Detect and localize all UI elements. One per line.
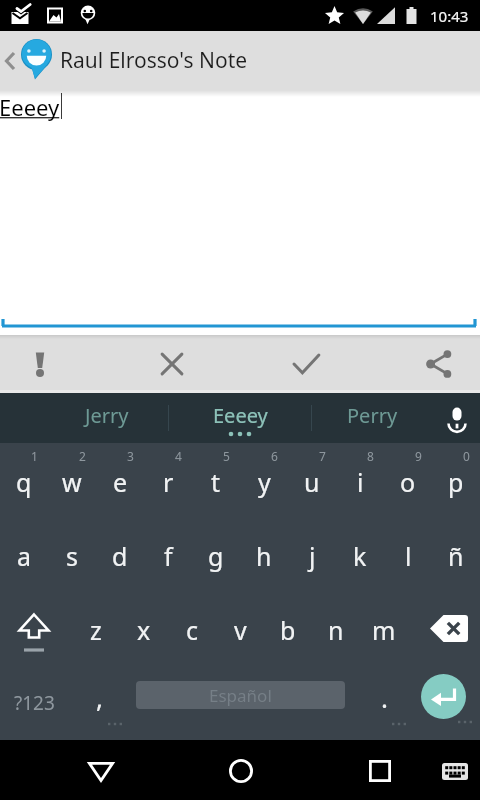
button[interactable]: Shift [0, 591, 68, 665]
staticText: h [256, 539, 272, 573]
staticText: 3 [127, 448, 134, 464]
button[interactable]: w [48, 443, 96, 517]
staticText: f [164, 539, 173, 573]
button[interactable]: t [192, 443, 240, 517]
staticText: Raul Elrosso's Note [60, 46, 248, 75]
staticText: c [186, 613, 199, 647]
staticText: 10:43 [430, 6, 469, 26]
staticText: z [90, 613, 102, 647]
button[interactable]: v [216, 591, 264, 665]
staticText: j [309, 539, 316, 573]
button[interactable]: ñ [432, 517, 480, 591]
staticText: o [400, 465, 416, 499]
button[interactable]: e [96, 443, 144, 517]
staticText: Eeeey [213, 402, 268, 429]
staticText: 0 [463, 448, 470, 464]
staticText: Perry [347, 402, 398, 429]
staticText: x [137, 613, 151, 647]
button[interactable]: q [0, 443, 48, 517]
button[interactable]: l [384, 517, 432, 591]
staticText: u [304, 465, 320, 499]
staticText: t [211, 465, 221, 499]
button[interactable]: Enter [421, 674, 466, 719]
staticText: 5 [223, 448, 230, 464]
staticText: Español [209, 684, 272, 707]
button[interactable]: y [240, 443, 288, 517]
staticText: 1 [31, 448, 38, 464]
staticText: 2 [79, 448, 86, 464]
button[interactable]: f [144, 517, 192, 591]
button[interactable]: d [96, 517, 144, 591]
button[interactable]: o [384, 443, 432, 517]
button[interactable]: r [144, 443, 192, 517]
staticText: r [163, 465, 174, 499]
staticText: d [112, 539, 128, 573]
button[interactable]: g [192, 517, 240, 591]
button[interactable]: m [360, 591, 408, 665]
button[interactable]: x [120, 591, 168, 665]
button[interactable]: n [312, 591, 360, 665]
staticText: q [16, 465, 32, 499]
button[interactable]: Save [277, 335, 335, 393]
button[interactable]: Perry [312, 393, 433, 443]
button[interactable]: c [168, 591, 216, 665]
staticText: n [328, 613, 344, 647]
staticText: . [381, 680, 388, 715]
button[interactable]: Jerry [46, 393, 168, 443]
staticText: 7 [319, 448, 326, 464]
button[interactable]: b [264, 591, 312, 665]
staticText: Eeeey [0, 92, 60, 122]
button[interactable]: p [432, 443, 480, 517]
staticText: y [258, 465, 271, 499]
button[interactable]: Home [201, 740, 281, 800]
button[interactable]: ?123 [0, 665, 68, 740]
staticText: m [372, 613, 396, 647]
staticText: k [353, 539, 367, 573]
button[interactable]: j [288, 517, 336, 591]
staticText: 6 [271, 448, 278, 464]
staticText: v [234, 613, 247, 647]
staticText: e [113, 465, 128, 499]
button[interactable]: Back [60, 740, 140, 800]
staticText: ?123 [14, 690, 55, 716]
button[interactable]: Priority [11, 335, 69, 393]
staticText: s [66, 539, 78, 573]
button[interactable]: , [72, 665, 130, 740]
staticText: a [17, 539, 32, 573]
button[interactable]: Recents [340, 740, 420, 800]
staticText: i [357, 465, 364, 499]
staticText: 4 [175, 448, 182, 464]
button[interactable]: Eeeey [169, 393, 311, 443]
button[interactable]: Switch keyboard [425, 740, 480, 800]
button[interactable]: Discard [143, 335, 201, 393]
staticText: 9 [415, 448, 422, 464]
button[interactable]: s [48, 517, 96, 591]
staticText: 8 [367, 448, 374, 464]
button[interactable]: Share [410, 335, 468, 393]
staticText: , [96, 680, 103, 715]
button[interactable]: h [240, 517, 288, 591]
button[interactable]: u [288, 443, 336, 517]
button[interactable]: Backspace [408, 591, 480, 665]
button[interactable]: k [336, 517, 384, 591]
button[interactable]: . [356, 665, 414, 740]
staticText: p [448, 465, 464, 499]
staticText: ñ [448, 539, 464, 573]
button[interactable]: i [336, 443, 384, 517]
staticText: w [62, 465, 82, 499]
button[interactable]: z [72, 591, 120, 665]
staticText: b [280, 613, 296, 647]
staticText: Jerry [85, 402, 129, 429]
button[interactable]: Español [136, 681, 345, 709]
other: App icon [21, 39, 52, 79]
staticText: l [405, 539, 412, 573]
staticText: g [208, 539, 224, 573]
button[interactable]: Voice input [433, 393, 480, 443]
button[interactable]: Back [0, 31, 20, 90]
button[interactable]: a [0, 517, 48, 591]
